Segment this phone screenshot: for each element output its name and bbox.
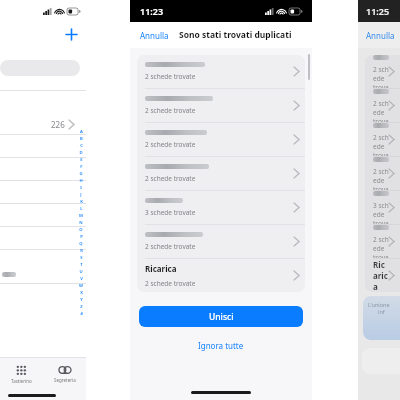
staticText: P — [80, 234, 83, 240]
staticText: T — [80, 262, 83, 268]
staticText: Annulla — [366, 30, 395, 41]
staticText: O — [79, 227, 83, 233]
button[interactable]: 2 schede trovate — [137, 225, 305, 259]
staticText: Ignora tutte — [198, 340, 244, 351]
button[interactable]: 2 schede trovate — [137, 55, 305, 89]
staticText: 2 schede trovate — [373, 133, 389, 156]
button[interactable]: 3 schede trovate — [365, 191, 400, 225]
staticText: 2 schede trovate — [145, 174, 196, 183]
staticText: Unisci — [209, 311, 234, 323]
staticText: # — [80, 311, 83, 317]
staticText: Y — [80, 297, 83, 303]
button[interactable]: Unisci — [139, 306, 303, 327]
staticText: I — [80, 185, 82, 191]
staticText: J — [80, 192, 82, 198]
staticText: Sono stati trovati duplicati — [179, 29, 292, 41]
staticText: A — [80, 129, 83, 135]
button[interactable]: Cerca — [0, 60, 80, 76]
staticText: inf — [378, 308, 385, 315]
button[interactable]: Annulla — [138, 28, 171, 43]
staticText: B — [80, 136, 83, 142]
staticText: 3 schede trovate — [145, 208, 196, 217]
staticText: L'unione — [368, 301, 390, 308]
staticText: 11:23 — [140, 5, 164, 17]
button[interactable]: 2 schede trovate — [365, 225, 400, 259]
staticText: C — [80, 143, 83, 149]
staticText: M — [79, 213, 83, 219]
staticText: 2 schede trovate — [145, 140, 196, 149]
staticText: 3 schede trovate — [373, 201, 389, 224]
staticText: V — [80, 276, 83, 282]
button[interactable]: 2 schede trovate — [365, 55, 400, 89]
button[interactable]: 2 schede trovate — [365, 89, 400, 123]
staticText: K — [80, 199, 83, 205]
button[interactable]: Ignora tutte — [196, 338, 246, 353]
button[interactable]: Segreteria — [43, 358, 86, 390]
staticText: Tastierino — [11, 378, 32, 384]
staticText: Ricarica — [145, 263, 177, 274]
staticText: Q — [79, 241, 83, 247]
staticText: Z — [80, 304, 83, 310]
button[interactable]: 2 schede trovate — [137, 89, 305, 123]
button[interactable]: 2 schede trovate — [365, 123, 400, 157]
staticText: Ricarica — [373, 259, 389, 292]
staticText: F — [80, 164, 83, 170]
staticText: Segreteria — [54, 377, 76, 383]
staticText: 2 schede trovate — [145, 279, 196, 288]
staticText: Annulla — [140, 30, 169, 41]
staticText: 2 schede trovate — [145, 242, 196, 251]
staticText: U — [79, 269, 83, 275]
staticText: R — [80, 248, 83, 254]
staticText: W — [79, 283, 83, 289]
staticText: 2 schede trovate — [145, 72, 196, 81]
staticText: 226 — [51, 119, 65, 130]
staticText: 2 schede trovate — [373, 167, 389, 190]
button[interactable]: Tastierino — [0, 358, 43, 390]
staticText: G — [79, 171, 83, 177]
button[interactable]: 2 schede trovate — [365, 157, 400, 191]
staticText: N — [79, 220, 83, 226]
staticText: X — [80, 290, 83, 296]
staticText: E — [80, 157, 83, 163]
staticText: H — [79, 178, 83, 184]
button[interactable]: Ricarica — [137, 259, 305, 292]
button[interactable]: 2 schede trovate — [137, 157, 305, 191]
button[interactable]: Annulla — [366, 30, 395, 41]
staticText: 2 schede trovate — [373, 65, 389, 88]
staticText: L — [80, 206, 83, 212]
staticText: D — [79, 150, 83, 156]
staticText: 2 schede trovate — [373, 99, 389, 122]
button[interactable]: Aggiungi contatto — [64, 27, 78, 41]
staticText: 2 schede trovate — [145, 106, 196, 115]
button[interactable]: 3 schede trovate — [137, 191, 305, 225]
staticText: 11:25 — [366, 5, 390, 17]
button[interactable]: Ricarica — [365, 259, 400, 292]
staticText: S — [80, 255, 83, 261]
button[interactable]: 2 schede trovate — [137, 123, 305, 157]
staticText: 2 schede trovate — [373, 235, 389, 258]
